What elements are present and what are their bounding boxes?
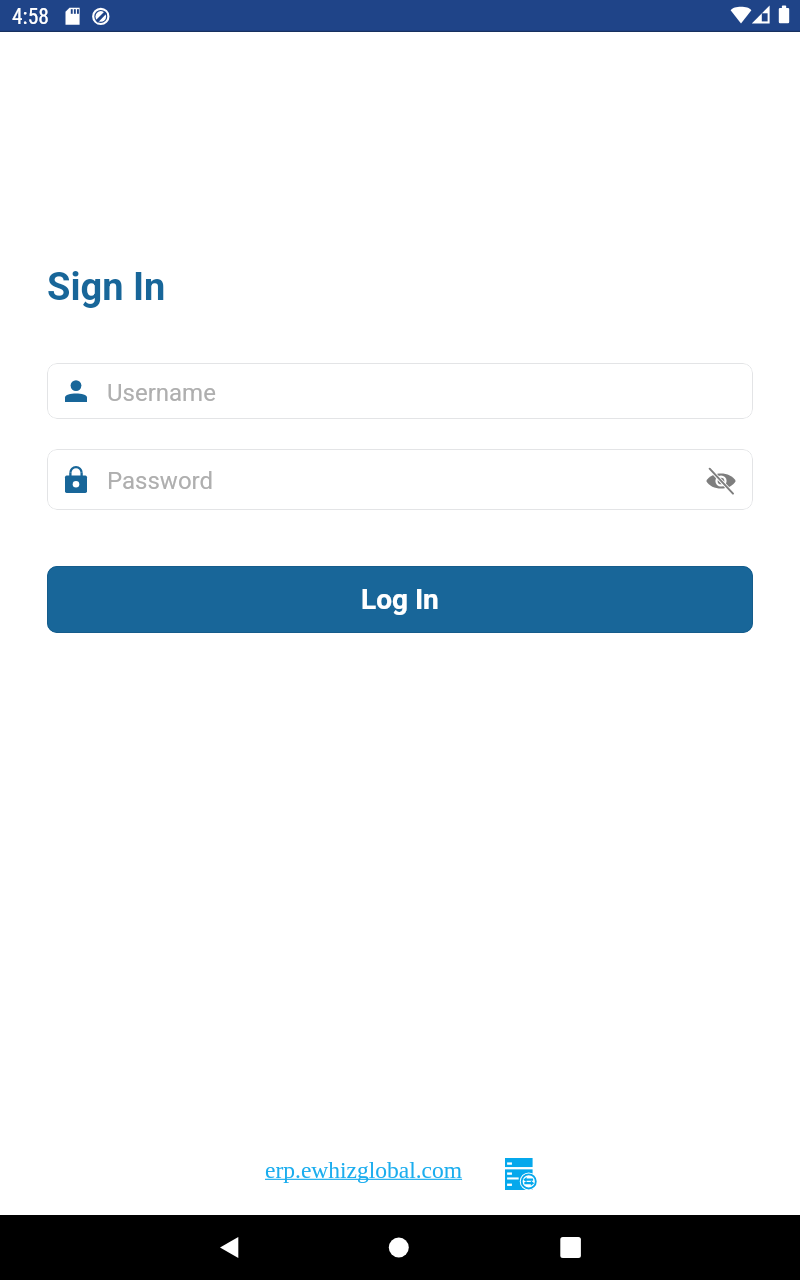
- button[interactable]: Username: [47, 363, 753, 419]
- button[interactable]: erp.ewhizglobal.com: [265, 1157, 463, 1183]
- button[interactable]: Password: [47, 449, 753, 510]
- button[interactable]: Log In: [47, 566, 753, 633]
- button[interactable]: Show password: [702, 460, 742, 500]
- staticText: 4:58: [12, 4, 49, 29]
- staticText: Sign In: [47, 265, 166, 310]
- staticText: Log In: [361, 583, 439, 616]
- staticText: Username: [107, 379, 216, 407]
- button[interactable]: Recent apps: [540, 1218, 600, 1278]
- button[interactable]: Server sync: [505, 1158, 537, 1190]
- staticText: Password: [107, 467, 702, 495]
- button[interactable]: Home: [370, 1218, 430, 1278]
- button[interactable]: Back: [199, 1218, 259, 1278]
